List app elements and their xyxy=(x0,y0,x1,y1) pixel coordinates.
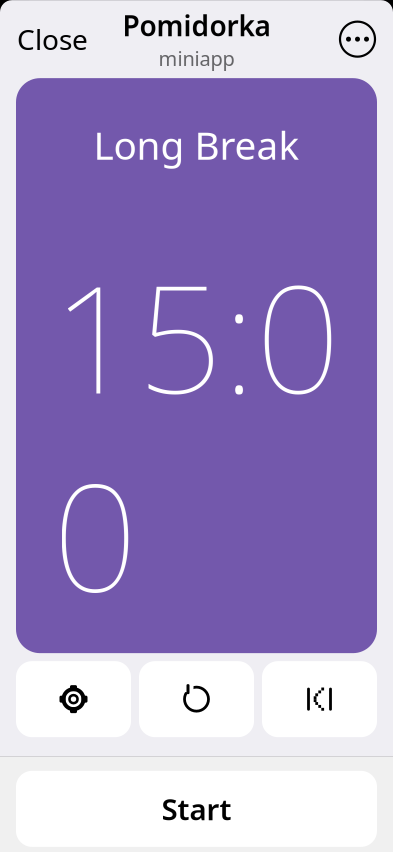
staticText: Long Break xyxy=(93,119,299,170)
button[interactable]: More options xyxy=(335,17,380,62)
button[interactable]: Start xyxy=(16,771,377,847)
staticText: Pomidorka xyxy=(122,7,270,44)
staticText: Close xyxy=(17,21,88,58)
staticText: Start xyxy=(161,789,231,828)
button[interactable]: Close xyxy=(13,11,92,68)
staticText: 15:00 xyxy=(52,236,340,633)
staticText: miniapp xyxy=(158,45,234,72)
button[interactable]: Skip to next interval xyxy=(262,661,377,737)
button[interactable]: Settings xyxy=(16,661,131,737)
button[interactable]: Reset timer xyxy=(139,661,254,737)
